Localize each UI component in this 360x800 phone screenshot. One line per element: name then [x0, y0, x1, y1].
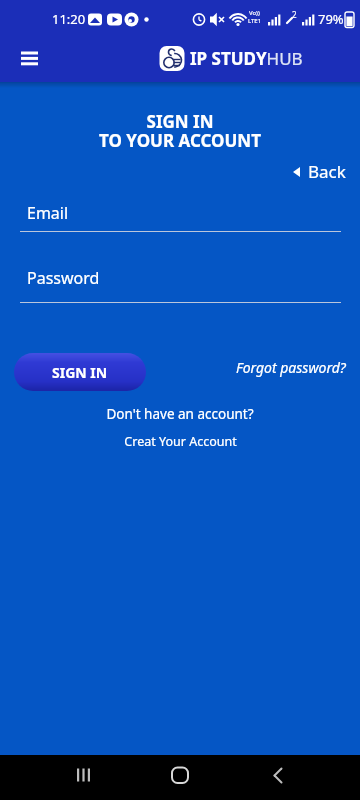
- button[interactable]: [63, 755, 103, 800]
- staticText: SIGN IN TO YOUR ACCOUNT: [0, 110, 360, 152]
- staticText: Don't have an account?: [0, 405, 360, 423]
- staticText: LTE1: [248, 17, 262, 25]
- button[interactable]: [20, 195, 341, 233]
- staticText: 79%: [318, 10, 344, 28]
- button[interactable]: SIGN IN: [14, 353, 146, 391]
- staticText: SIGN IN: [52, 363, 108, 382]
- staticText: 2: [292, 9, 297, 20]
- button[interactable]: [160, 755, 200, 800]
- staticText: Back: [308, 160, 346, 183]
- button[interactable]: Creat Your Account: [124, 433, 237, 450]
- button[interactable]: [258, 755, 298, 800]
- button[interactable]: [10, 44, 50, 74]
- button[interactable]: Forgot password?: [236, 358, 346, 377]
- button[interactable]: Back: [292, 160, 346, 183]
- staticText: Password: [27, 267, 100, 289]
- staticText: Vo)): [249, 9, 260, 17]
- button[interactable]: [20, 266, 341, 304]
- staticText: IP STUDYHUB: [190, 47, 303, 70]
- staticText: Email: [27, 202, 69, 224]
- staticText: 11:20: [52, 10, 86, 28]
